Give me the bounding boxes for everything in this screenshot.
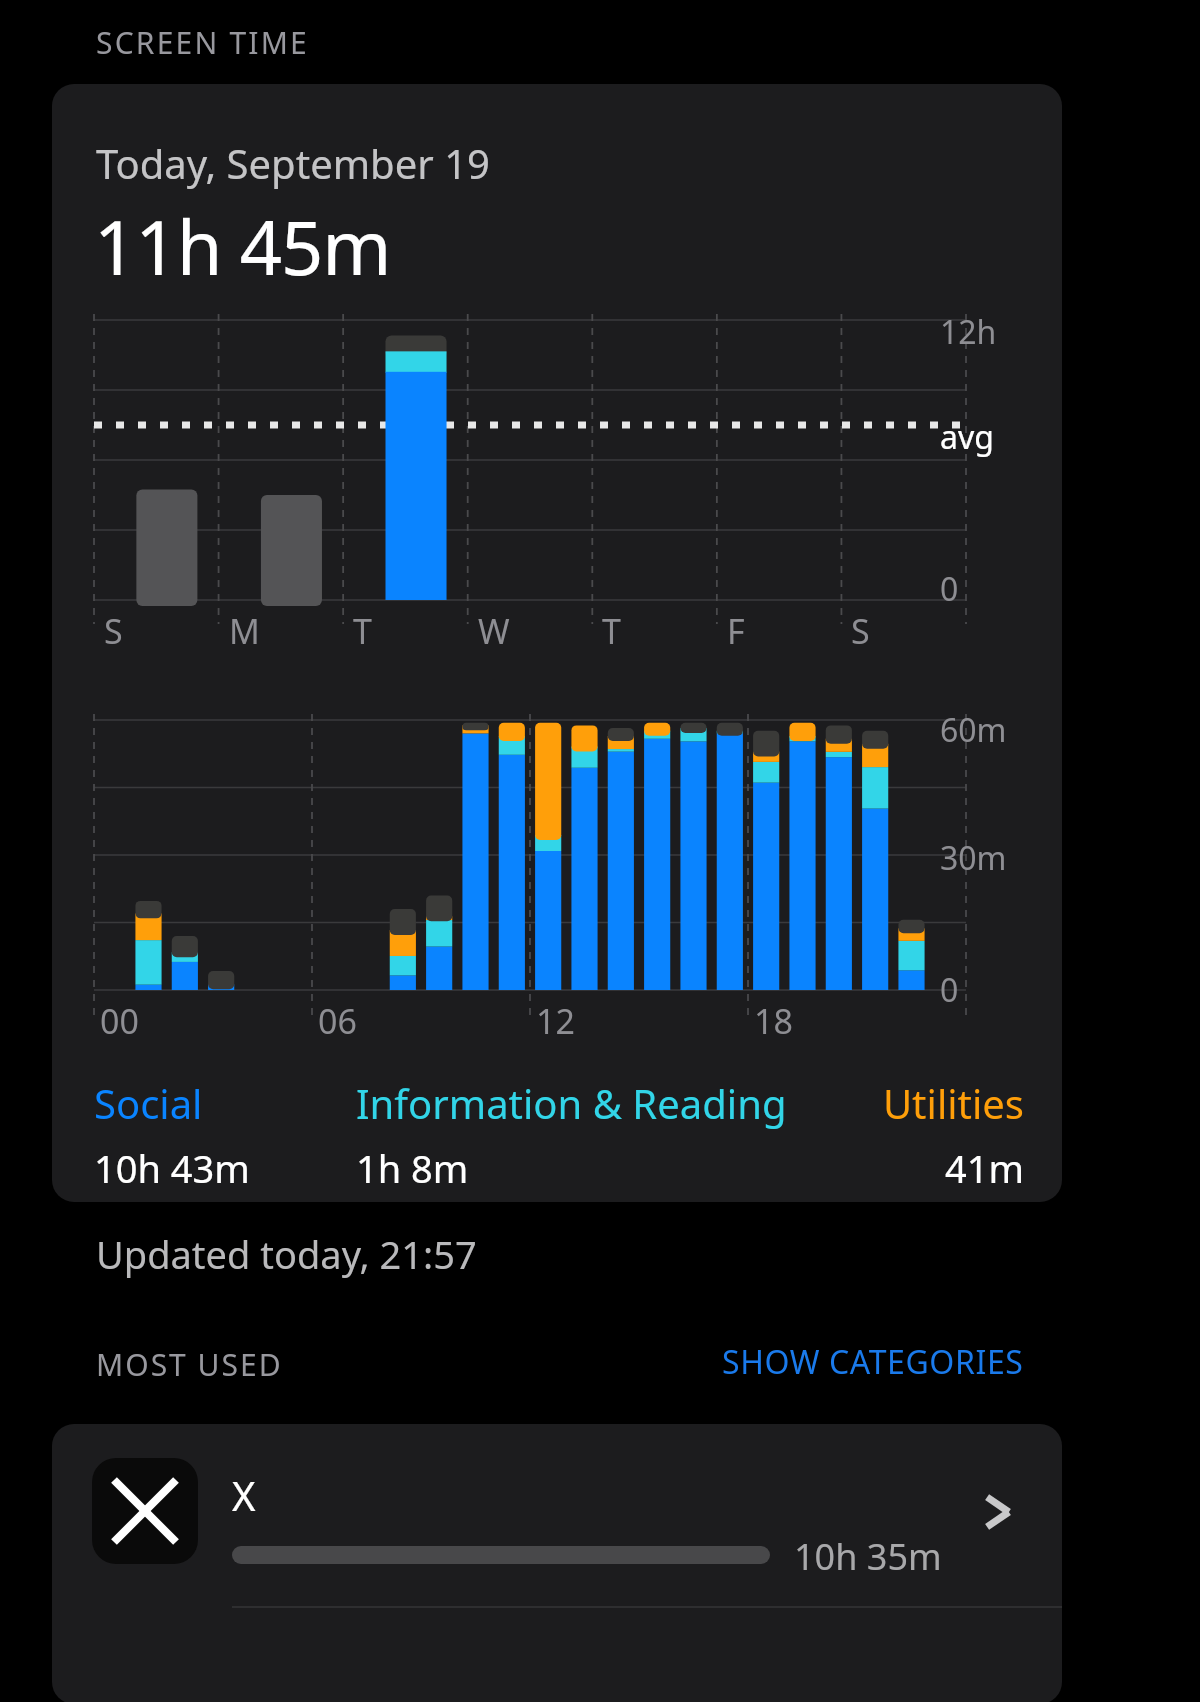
staticText: Today, September 19 (96, 136, 490, 190)
other: Open X details (968, 1482, 1028, 1542)
staticText: 60m (940, 708, 1007, 752)
staticText: 11h 45m (94, 196, 391, 297)
staticText: Updated today, 21:57 (96, 1228, 477, 1280)
staticText: 41m (944, 1142, 1024, 1186)
staticText: avg (940, 415, 994, 459)
staticText: 10h 43m (94, 1142, 250, 1186)
staticText: F (727, 608, 745, 654)
staticText: 12h (940, 310, 997, 354)
staticText: 12 (536, 998, 575, 1044)
staticText: X (232, 1468, 256, 1522)
staticText: 1h 8m (356, 1142, 469, 1186)
staticText: Utilities (882, 1076, 1024, 1130)
staticText: 0 (940, 968, 959, 1012)
staticText: 18 (754, 998, 793, 1044)
staticText: S (104, 608, 123, 654)
staticText: S (851, 608, 870, 654)
staticText: T (602, 608, 621, 654)
staticText: W (478, 608, 510, 654)
staticText: 30m (940, 836, 1007, 880)
staticText: 06 (318, 998, 357, 1044)
staticText: SCREEN TIME (96, 22, 309, 63)
staticText: Information & Reading (356, 1076, 787, 1130)
staticText: SHOW CATEGORIES (722, 1340, 1024, 1384)
staticText: MOST USED (96, 1344, 283, 1385)
staticText: T (353, 608, 372, 654)
button[interactable]: Today, September 19 (52, 84, 1062, 1202)
button[interactable]: SHOW CATEGORIES (718, 1334, 1028, 1390)
staticText: 10h 35m (794, 1532, 942, 1581)
staticText: M (229, 608, 260, 654)
staticText: Social (94, 1076, 203, 1130)
staticText: 00 (100, 998, 139, 1044)
button[interactable]: X (52, 1424, 1062, 1598)
staticText: 0 (940, 567, 959, 611)
